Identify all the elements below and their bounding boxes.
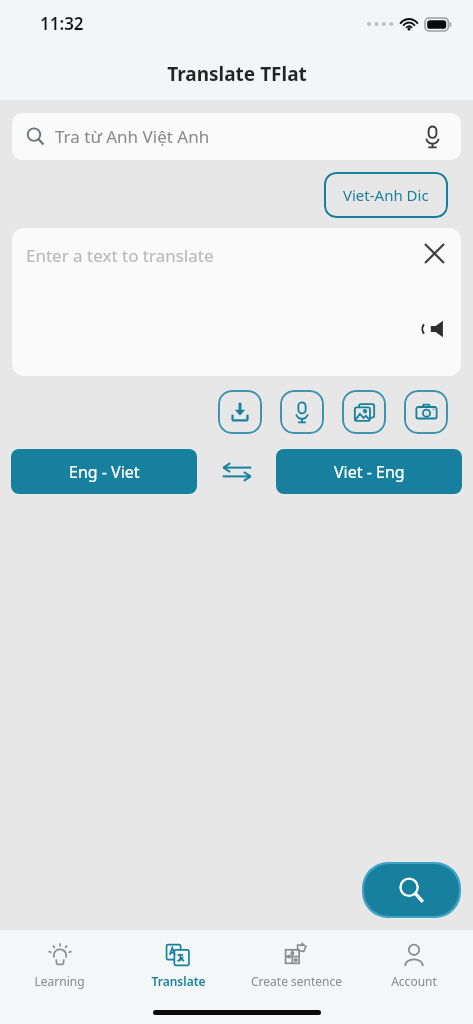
staticText: 11:32 [40,12,84,35]
button[interactable]: Create sentence [237,930,355,1000]
staticText: Translate TFlat [167,61,307,87]
button[interactable]: Voice search [417,122,447,152]
button[interactable]: Voice input [280,390,324,434]
staticText: Account [391,973,437,989]
button[interactable]: Download [218,390,262,434]
button[interactable]: Camera [404,390,448,434]
button[interactable]: Learning [0,930,119,1000]
button[interactable]: Enter a text to translate [12,228,461,376]
button[interactable]: Viet-Anh Dic [324,172,448,218]
button[interactable]: Search [364,864,459,916]
button[interactable]: Viet - Eng [276,449,462,494]
button[interactable]: Account [355,930,473,1000]
staticText: Eng - Viet [69,461,140,483]
staticText: Tra từ Anh Việt Anh [55,125,417,148]
button[interactable]: Eng - Viet [11,449,197,494]
button[interactable]: Clear text [417,236,451,270]
staticText: Translate [151,973,206,989]
staticText: Create sentence [251,973,342,989]
staticText: Learning [34,973,85,989]
staticText: Viet - Eng [334,461,405,483]
button[interactable]: Speak text [416,312,450,346]
button[interactable]: Swap languages [197,449,276,494]
button[interactable]: Tra từ Anh Việt Anh [12,113,461,160]
button[interactable]: Translate [119,930,237,1000]
staticText: Viet-Anh Dic [343,185,429,205]
staticText: Enter a text to translate [26,244,214,267]
button[interactable]: Pick image [342,390,386,434]
